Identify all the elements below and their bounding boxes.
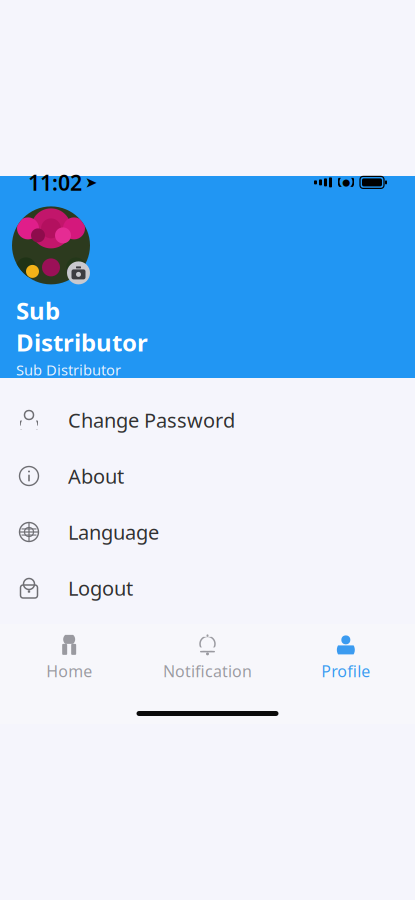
staticText: Profile: [321, 660, 370, 682]
staticText: ●: [342, 177, 350, 188]
button[interactable]: Logout: [0, 560, 415, 616]
staticText: Change Password: [68, 407, 235, 433]
staticText: Sub Distributor: [16, 360, 121, 380]
button[interactable]: Change profile photo: [12, 206, 90, 284]
button[interactable]: Change Password: [0, 392, 415, 448]
staticText: 11:02: [28, 168, 82, 196]
staticText: Sub Distributor: [16, 294, 148, 358]
staticText: ➤: [85, 174, 97, 191]
button[interactable]: About: [0, 448, 415, 504]
button[interactable]: Notification: [138, 632, 277, 684]
button[interactable]: Profile: [277, 632, 415, 684]
button[interactable]: Language: [0, 504, 415, 560]
staticText: Language: [68, 519, 159, 545]
staticText: Home: [46, 660, 92, 682]
staticText: Notification: [163, 660, 252, 682]
staticText: About: [68, 463, 124, 489]
staticText: Logout: [68, 575, 133, 601]
button[interactable]: Home: [0, 632, 138, 684]
